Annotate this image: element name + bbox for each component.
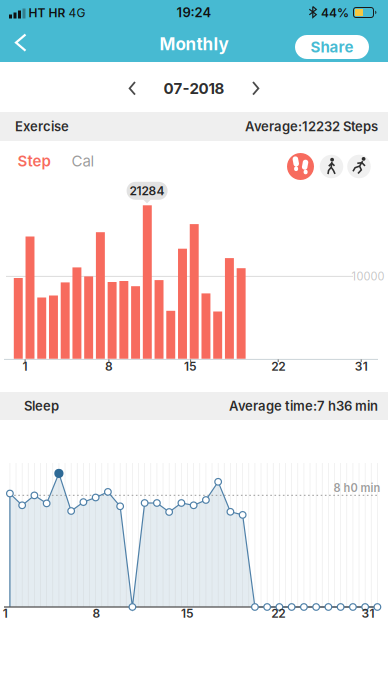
button[interactable]: Back: [3, 26, 37, 60]
staticText: 07-2018: [163, 78, 224, 99]
staticText: 1: [3, 605, 8, 622]
staticText: 31: [361, 605, 374, 622]
button[interactable]: Steps: [285, 151, 315, 181]
staticText: Average time:7 h36 min: [229, 397, 378, 415]
staticText: Step: [17, 150, 50, 172]
button[interactable]: Step: [9, 146, 59, 176]
staticText: 1: [23, 358, 28, 375]
button[interactable]: Walking: [316, 151, 346, 181]
staticText: 44%: [321, 4, 349, 22]
staticText: 8: [92, 605, 100, 622]
staticText: Exercise: [15, 117, 69, 136]
staticText: 4G: [68, 4, 85, 22]
staticText: 8 h0 min: [333, 480, 380, 496]
staticText: 22: [271, 358, 285, 375]
staticText: 21284: [130, 182, 165, 199]
button[interactable]: Previous month: [117, 73, 147, 103]
staticText: 10000: [351, 268, 384, 284]
staticText: 22: [271, 605, 285, 622]
staticText: Cal: [71, 150, 94, 172]
staticText: 19:24: [176, 3, 211, 22]
button[interactable]: Share: [295, 35, 369, 59]
staticText: Average:12232 Steps: [245, 117, 378, 136]
staticText: 31: [355, 358, 368, 375]
staticText: HT HR: [28, 4, 65, 22]
staticText: Sleep: [24, 397, 59, 415]
staticText: 15: [181, 605, 194, 622]
staticText: Share: [310, 36, 353, 58]
staticText: Monthly: [159, 32, 228, 56]
button[interactable]: Running: [344, 151, 374, 181]
button[interactable]: Next month: [241, 73, 271, 103]
staticText: 15: [184, 358, 197, 375]
staticText: 8: [105, 358, 113, 375]
button[interactable]: Cal: [61, 146, 105, 176]
